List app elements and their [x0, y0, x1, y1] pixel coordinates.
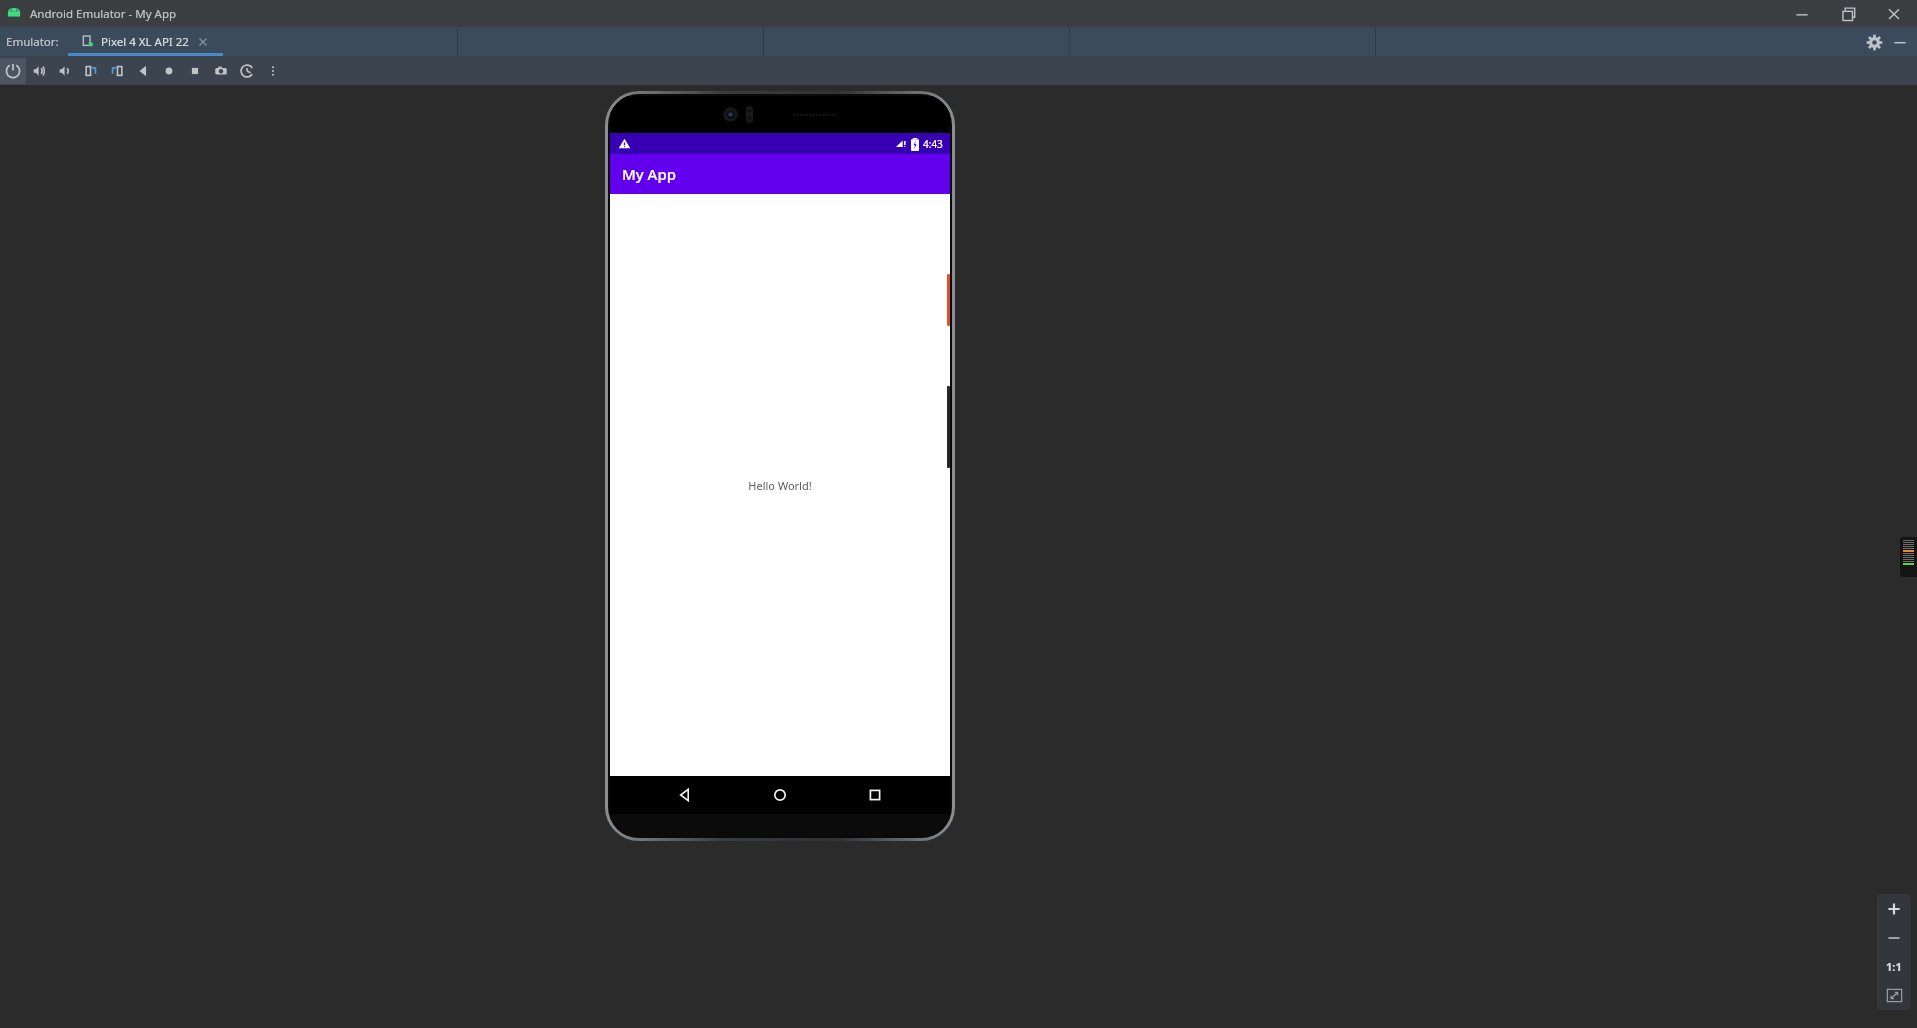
button[interactable]: Back: [130, 58, 156, 84]
button[interactable]: Zoom out: [1877, 924, 1911, 952]
staticText: Hello World!: [748, 478, 812, 493]
staticText: Pixel 4 XL API 22: [101, 34, 189, 50]
button[interactable]: Back: [665, 776, 705, 814]
button[interactable]: Volume down: [52, 58, 78, 84]
button[interactable]: Home: [156, 58, 182, 84]
button[interactable]: Rotate right: [104, 58, 130, 84]
button[interactable]: Overview: [182, 58, 208, 84]
button[interactable]: More: [260, 58, 286, 84]
button[interactable]: Minimize: [1779, 0, 1825, 27]
button[interactable]: Screenshot: [208, 58, 234, 84]
button[interactable]: Pixel 4 XL API 22: [68, 27, 210, 56]
button[interactable]: Volume up: [26, 58, 52, 84]
button[interactable]: Overview: [855, 776, 895, 814]
button[interactable]: Zoom in: [1877, 894, 1911, 924]
button[interactable]: Home: [760, 776, 800, 814]
button[interactable]: Restore: [1825, 0, 1871, 27]
button[interactable]: Minimize panel: [1887, 29, 1913, 55]
staticText: Emulator:: [6, 34, 59, 50]
button[interactable]: Close: [1871, 0, 1917, 27]
staticText: 1:1: [1886, 959, 1902, 974]
button[interactable]: History: [234, 58, 260, 84]
button[interactable]: Close tab: [196, 35, 210, 49]
button[interactable]: 1:1: [1877, 952, 1911, 980]
staticText: Android Emulator - My App: [30, 6, 177, 22]
staticText: 4:43: [923, 137, 943, 151]
button[interactable]: Fit to screen: [1877, 980, 1911, 1010]
button[interactable]: Rotate left: [78, 58, 104, 84]
button[interactable]: Settings: [1861, 29, 1887, 55]
staticText: My App: [622, 164, 677, 184]
button[interactable]: Panel: [1900, 537, 1917, 577]
button[interactable]: Power: [0, 58, 26, 84]
